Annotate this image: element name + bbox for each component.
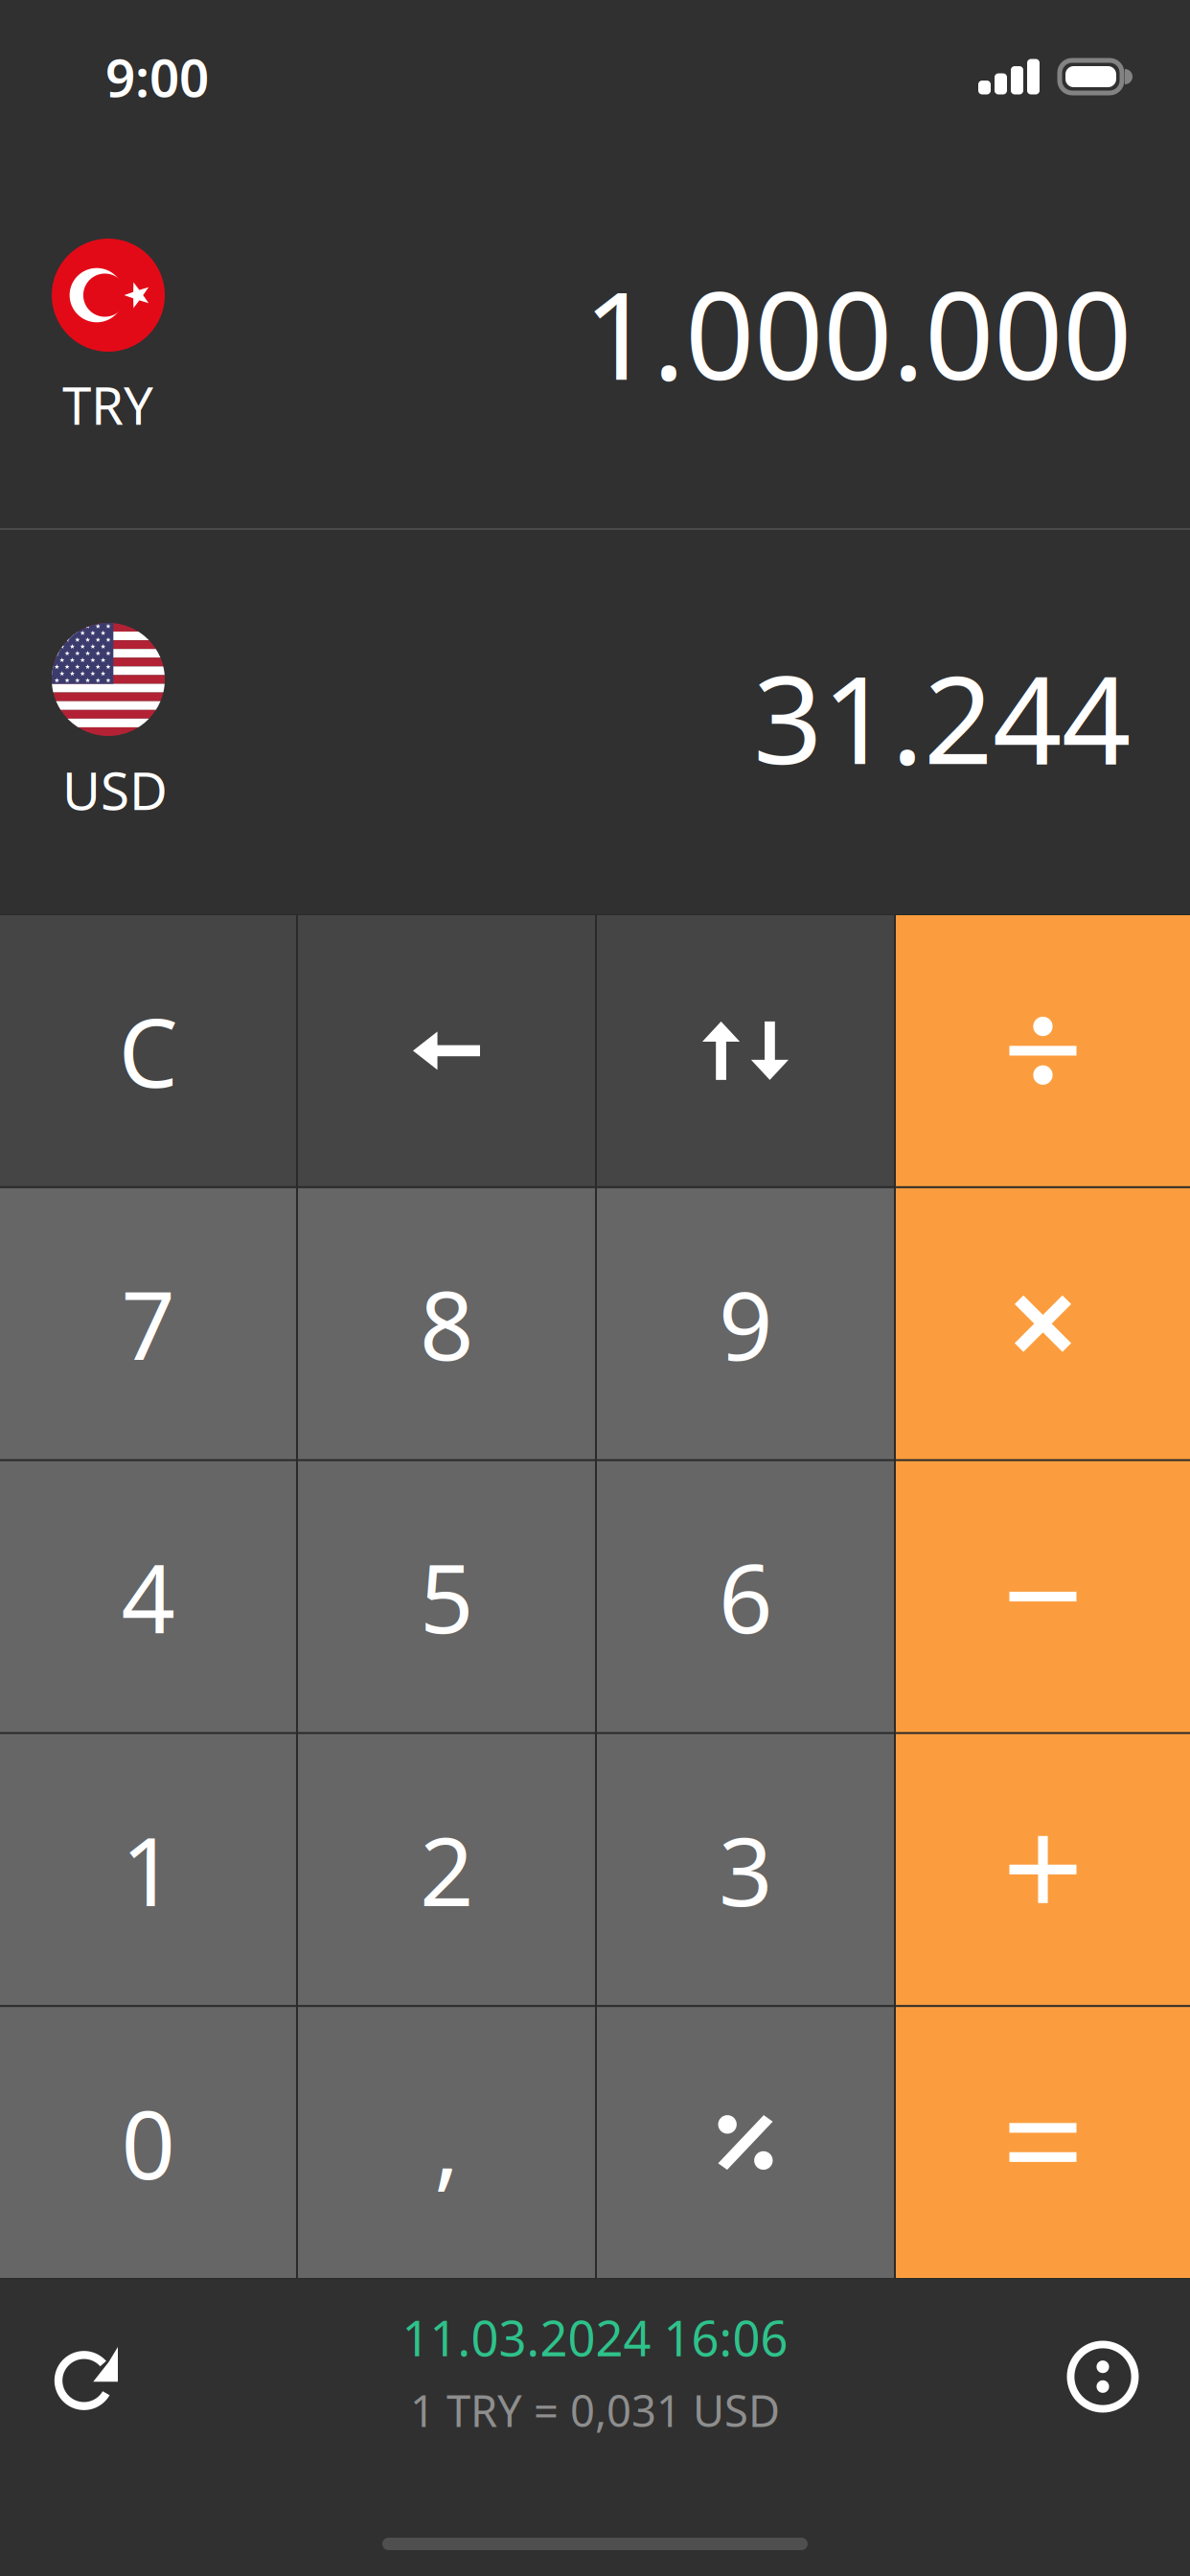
button[interactable]: , <box>298 2007 595 2278</box>
staticText: 2 <box>420 1807 473 1932</box>
button[interactable]: Swap currencies <box>597 915 894 1186</box>
button[interactable]: 6 <box>597 1461 894 1732</box>
staticText: 7 <box>121 1261 175 1386</box>
button[interactable]: 1 <box>0 1734 296 2005</box>
button[interactable]: 7 <box>0 1188 296 1459</box>
button[interactable]: Refresh rates <box>16 2305 160 2449</box>
staticText: 1 <box>121 1807 175 1932</box>
staticText: 3 <box>719 1807 772 1932</box>
staticText: 9:00 <box>105 42 209 111</box>
staticText: 1 TRY = 0,031 USD <box>410 2381 780 2439</box>
button[interactable]: 5 <box>298 1461 595 1732</box>
button[interactable]: 8 <box>298 1188 595 1459</box>
button[interactable]: Plus <box>896 1734 1190 2005</box>
button[interactable]: Backspace <box>298 915 595 1186</box>
button[interactable]: TRY <box>0 239 218 517</box>
button[interactable]: 2 <box>298 1734 595 2005</box>
staticText: 11.03.2024 16:06 <box>402 2305 788 2370</box>
staticText: 31.244 <box>753 636 1131 797</box>
button[interactable]: 0 <box>0 2007 296 2278</box>
staticText: 0 <box>121 2080 175 2205</box>
staticText: 5 <box>420 1534 473 1659</box>
button[interactable]: 9 <box>597 1188 894 1459</box>
button[interactable]: 4 <box>0 1461 296 1732</box>
button[interactable]: Minus <box>896 1461 1190 1732</box>
staticText: 4 <box>121 1534 175 1659</box>
button[interactable]: Percent <box>597 2007 894 2278</box>
staticText: 8 <box>420 1261 473 1386</box>
button[interactable]: Divide <box>896 915 1190 1186</box>
staticText: 9 <box>719 1261 772 1386</box>
button[interactable]: C <box>0 915 296 1186</box>
staticText: USD <box>62 755 168 824</box>
staticText: C <box>118 988 178 1113</box>
staticText: 6 <box>719 1534 772 1659</box>
button[interactable]: More options <box>1031 2305 1175 2449</box>
button[interactable]: 3 <box>597 1734 894 2005</box>
button[interactable]: Equals <box>896 2007 1190 2278</box>
button[interactable]: Multiply <box>896 1188 1190 1459</box>
staticText: , <box>434 2080 459 2205</box>
staticText: 1.000.000 <box>584 252 1132 413</box>
button[interactable]: USD <box>0 623 218 901</box>
staticText: TRY <box>62 370 153 439</box>
